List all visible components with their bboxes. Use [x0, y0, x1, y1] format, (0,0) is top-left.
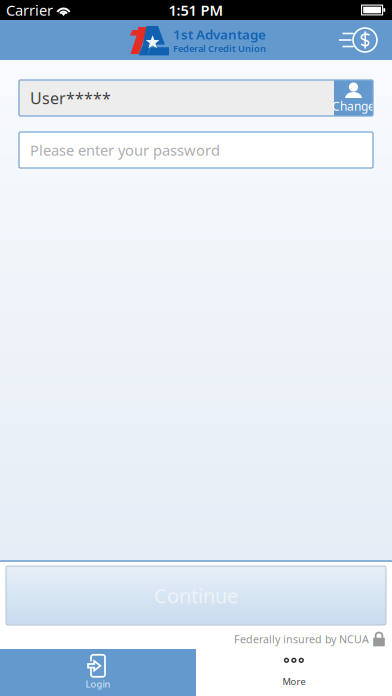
staticText: Change [332, 98, 375, 114]
staticText: More [282, 675, 305, 688]
staticText: Federal Credit Union [173, 42, 266, 55]
button[interactable]: Rates [337, 24, 379, 55]
staticText: Federally insured by NCUA [234, 632, 369, 646]
button[interactable]: More [196, 649, 392, 696]
staticText: Carrier [6, 0, 53, 20]
staticText: Continue [154, 582, 238, 609]
button[interactable]: Continue [0, 562, 392, 625]
staticText: 1:51 PM [168, 0, 223, 20]
button[interactable]: Change [334, 80, 373, 116]
staticText: Please enter your password [30, 140, 220, 160]
staticText: Login [85, 678, 110, 690]
button[interactable]: Login [0, 649, 196, 696]
staticText: User***** [30, 87, 111, 109]
staticText: 1st Advantage [173, 25, 266, 43]
